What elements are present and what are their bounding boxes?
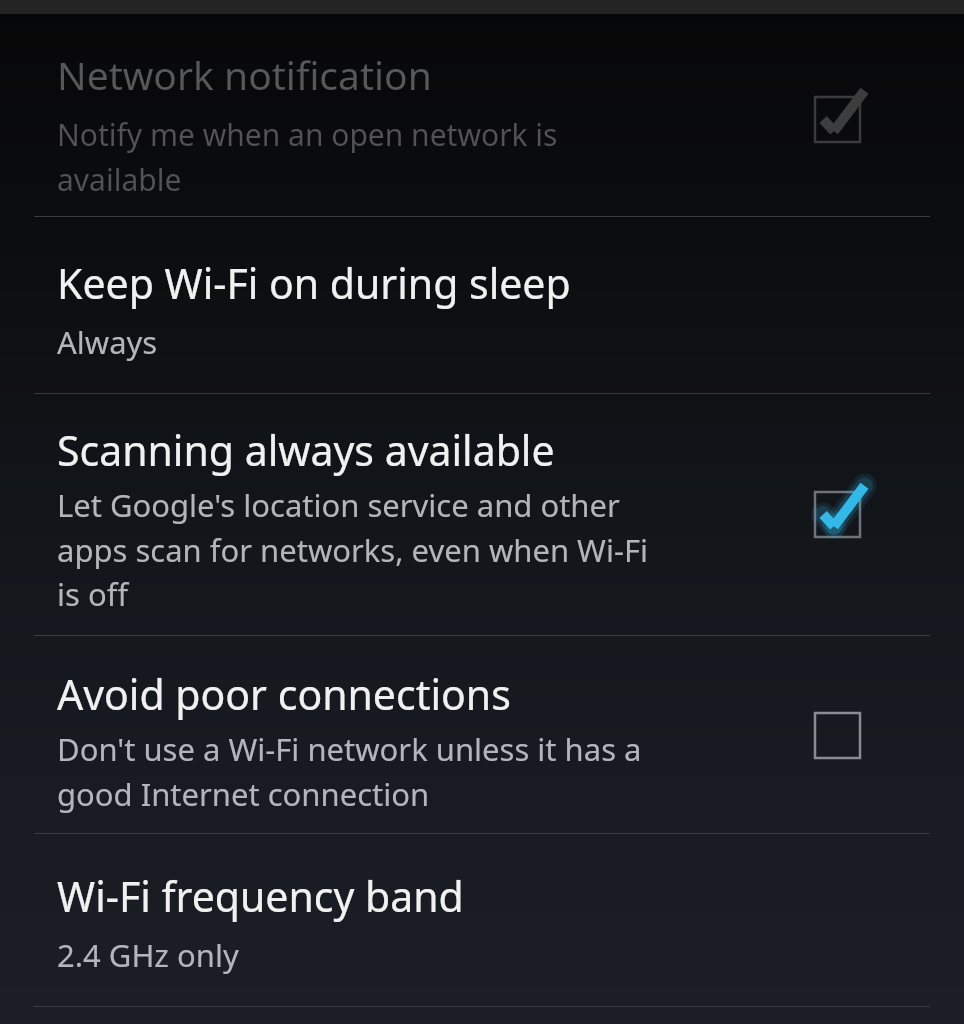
staticText: Network notification bbox=[57, 48, 432, 101]
staticText: Notify me when an open network is availa… bbox=[57, 114, 757, 199]
staticText: Always bbox=[57, 321, 757, 363]
button[interactable]: Keep Wi-Fi on during sleep bbox=[0, 217, 964, 393]
staticText: Avoid poor connections bbox=[57, 666, 511, 722]
button[interactable]: Avoid poor connections bbox=[0, 636, 964, 833]
staticText: Let Google's location service and other … bbox=[57, 484, 777, 615]
staticText: Scanning always available bbox=[57, 422, 555, 478]
staticText: Don't use a Wi-Fi network unless it has … bbox=[57, 728, 777, 815]
button[interactable]: Avoid poor connections checkbox, uncheck… bbox=[789, 687, 886, 784]
button[interactable]: Scanning always available checkbox, chec… bbox=[789, 466, 886, 563]
button[interactable]: Network notification bbox=[0, 14, 964, 216]
button[interactable]: Scanning always available bbox=[0, 394, 964, 635]
staticText: 2.4 GHz only bbox=[57, 934, 757, 976]
button[interactable]: Network notification checkbox, checked, … bbox=[789, 71, 886, 168]
staticText: Wi-Fi frequency band bbox=[57, 868, 464, 924]
staticText: Keep Wi-Fi on during sleep bbox=[57, 255, 571, 311]
button[interactable]: Wi-Fi frequency band bbox=[0, 834, 964, 1006]
